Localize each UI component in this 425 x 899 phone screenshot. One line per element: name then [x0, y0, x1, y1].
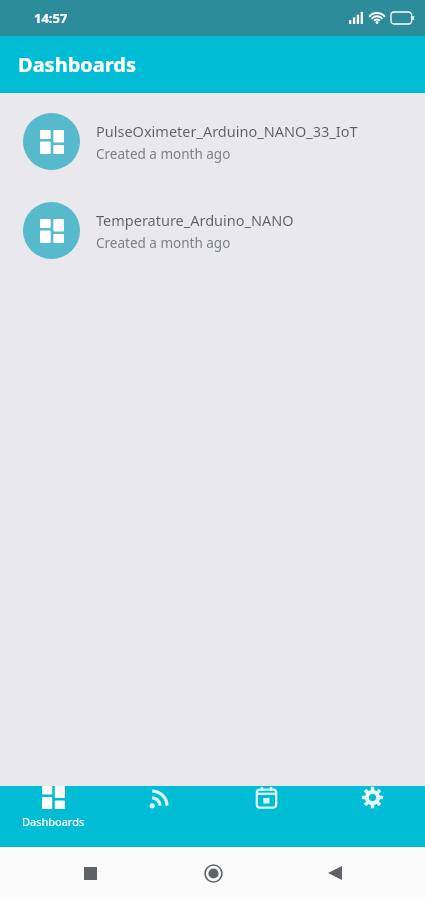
button[interactable]: Settings	[319, 786, 425, 809]
staticText: Temperature_Arduino_NANO	[96, 210, 294, 230]
staticText: Dashboards	[22, 814, 85, 829]
staticText: Created a month ago	[96, 145, 231, 163]
staticText: 14:57	[34, 9, 68, 27]
button[interactable]: PulseOximeter_Arduino_NANO_33_IoT	[0, 103, 425, 180]
button[interactable]: Dashboards	[0, 786, 107, 829]
staticText: Dashboards	[18, 51, 136, 78]
button[interactable]: Home	[193, 853, 233, 893]
button[interactable]: Back	[315, 853, 355, 893]
button[interactable]: Temperature_Arduino_NANO	[0, 192, 425, 269]
button[interactable]: Calendar	[213, 786, 319, 809]
button[interactable]: Recents	[70, 853, 110, 893]
staticText: PulseOximeter_Arduino_NANO_33_IoT	[96, 121, 358, 141]
button[interactable]: Feed	[107, 786, 213, 809]
staticText: Created a month ago	[96, 234, 231, 252]
